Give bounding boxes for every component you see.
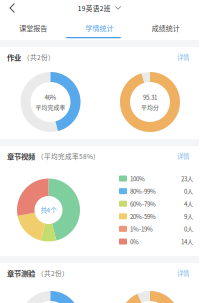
- staticText: 详情: [177, 52, 189, 62]
- staticText: （共2份）: [35, 268, 69, 278]
- button[interactable]: 课堂报告: [0, 16, 66, 40]
- button[interactable]: 详情: [175, 52, 191, 62]
- staticText: 9人: [184, 212, 193, 221]
- staticText: 0人: [184, 187, 193, 196]
- staticText: 详情: [177, 268, 189, 278]
- staticText: 100%: [130, 174, 145, 183]
- staticText: （共2份）: [21, 52, 55, 62]
- staticText: 课堂报告: [19, 23, 47, 33]
- staticText: 学情统计: [85, 23, 113, 33]
- staticText: 详情: [177, 151, 189, 161]
- staticText: 80%-99%: [130, 187, 156, 196]
- staticText: 14人: [181, 237, 193, 246]
- staticText: 23人: [181, 174, 193, 183]
- staticText: 19英语2班: [78, 3, 111, 13]
- staticText: 1%-19%: [130, 224, 153, 233]
- staticText: 平均完成率: [35, 103, 65, 111]
- staticText: 共4个: [40, 205, 56, 215]
- staticText: 0%: [130, 237, 139, 246]
- button[interactable]: 详情: [175, 151, 191, 161]
- button[interactable]: 详情: [175, 268, 191, 278]
- button[interactable]: 学情统计: [66, 16, 133, 40]
- staticText: 平均分: [141, 103, 159, 111]
- staticText: 章节视频: [7, 151, 35, 161]
- staticText: （平均完成率58%）: [35, 151, 100, 161]
- staticText: 95.31: [143, 93, 157, 102]
- staticText: 0人: [184, 224, 193, 233]
- staticText: 60%-79%: [130, 199, 156, 208]
- button[interactable]: Back: [0, 1, 24, 15]
- staticText: 4人: [184, 199, 193, 208]
- staticText: 20%-59%: [130, 212, 156, 221]
- staticText: 章节测验: [7, 268, 35, 278]
- button[interactable]: 成绩统计: [133, 16, 199, 40]
- staticText: 作业: [7, 52, 21, 62]
- staticText: 46%: [44, 93, 56, 102]
- staticText: 成绩统计: [152, 23, 180, 33]
